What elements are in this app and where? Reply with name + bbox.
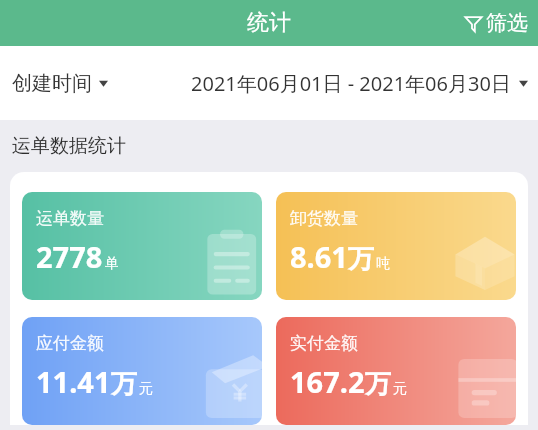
staticText: 运单数量	[36, 208, 104, 229]
staticText: 2778	[36, 237, 103, 276]
staticText: 万	[365, 368, 391, 401]
button[interactable]: 创建时间	[0, 63, 116, 104]
staticText: 实付金额	[290, 333, 358, 354]
staticText: 万	[348, 243, 374, 276]
staticText: 2021年06月01日 - 2021年06月30日	[191, 70, 511, 97]
staticText: 元	[393, 380, 407, 398]
staticText: 8.61	[290, 237, 348, 276]
staticText: 167.2	[290, 362, 365, 401]
button[interactable]: 2021年06月01日 - 2021年06月30日	[183, 62, 538, 105]
button[interactable]: 运单数量	[22, 192, 262, 300]
staticText: 吨	[376, 255, 390, 273]
button[interactable]: 卸货数量	[276, 192, 516, 300]
staticText: 单	[105, 255, 119, 273]
staticText: 应付金额	[36, 333, 104, 354]
staticText: 筛选	[486, 10, 528, 36]
staticText: 卸货数量	[290, 208, 358, 229]
button[interactable]: 实付金额	[276, 317, 516, 425]
staticText: 元	[139, 380, 153, 398]
staticText: 创建时间	[12, 71, 92, 96]
staticText: 11.41	[36, 362, 111, 401]
staticText: 运单数据统计	[12, 134, 126, 158]
staticText: 统计	[247, 9, 291, 37]
button[interactable]: 应付金额	[22, 317, 262, 425]
staticText: 万	[111, 368, 137, 401]
button[interactable]: 筛选	[454, 4, 538, 42]
